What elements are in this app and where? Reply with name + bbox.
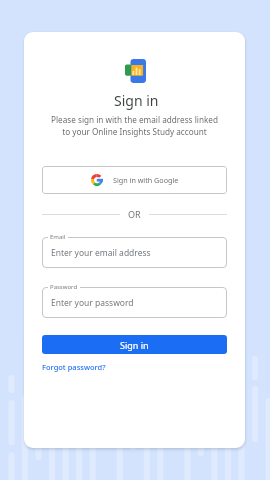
button[interactable]: Sign in with Google — [42, 166, 227, 194]
staticText: OR — [128, 208, 141, 220]
button[interactable]: Sign in — [42, 335, 227, 354]
staticText: Password — [50, 283, 78, 291]
staticText: Enter your password — [51, 297, 134, 309]
staticText: Sign in with Google — [113, 175, 179, 185]
staticText: Sign in — [114, 91, 159, 110]
button[interactable]: Forgot password? — [42, 362, 106, 372]
staticText: Email — [50, 233, 66, 241]
staticText: Forgot password? — [42, 362, 106, 372]
staticText: Sign in — [120, 339, 149, 351]
staticText: Enter your email address — [51, 247, 151, 259]
button[interactable]: Enter your email address — [42, 237, 227, 268]
button[interactable]: Enter your password — [42, 287, 227, 318]
staticText: Please sign in with the email address li… — [51, 114, 218, 137]
